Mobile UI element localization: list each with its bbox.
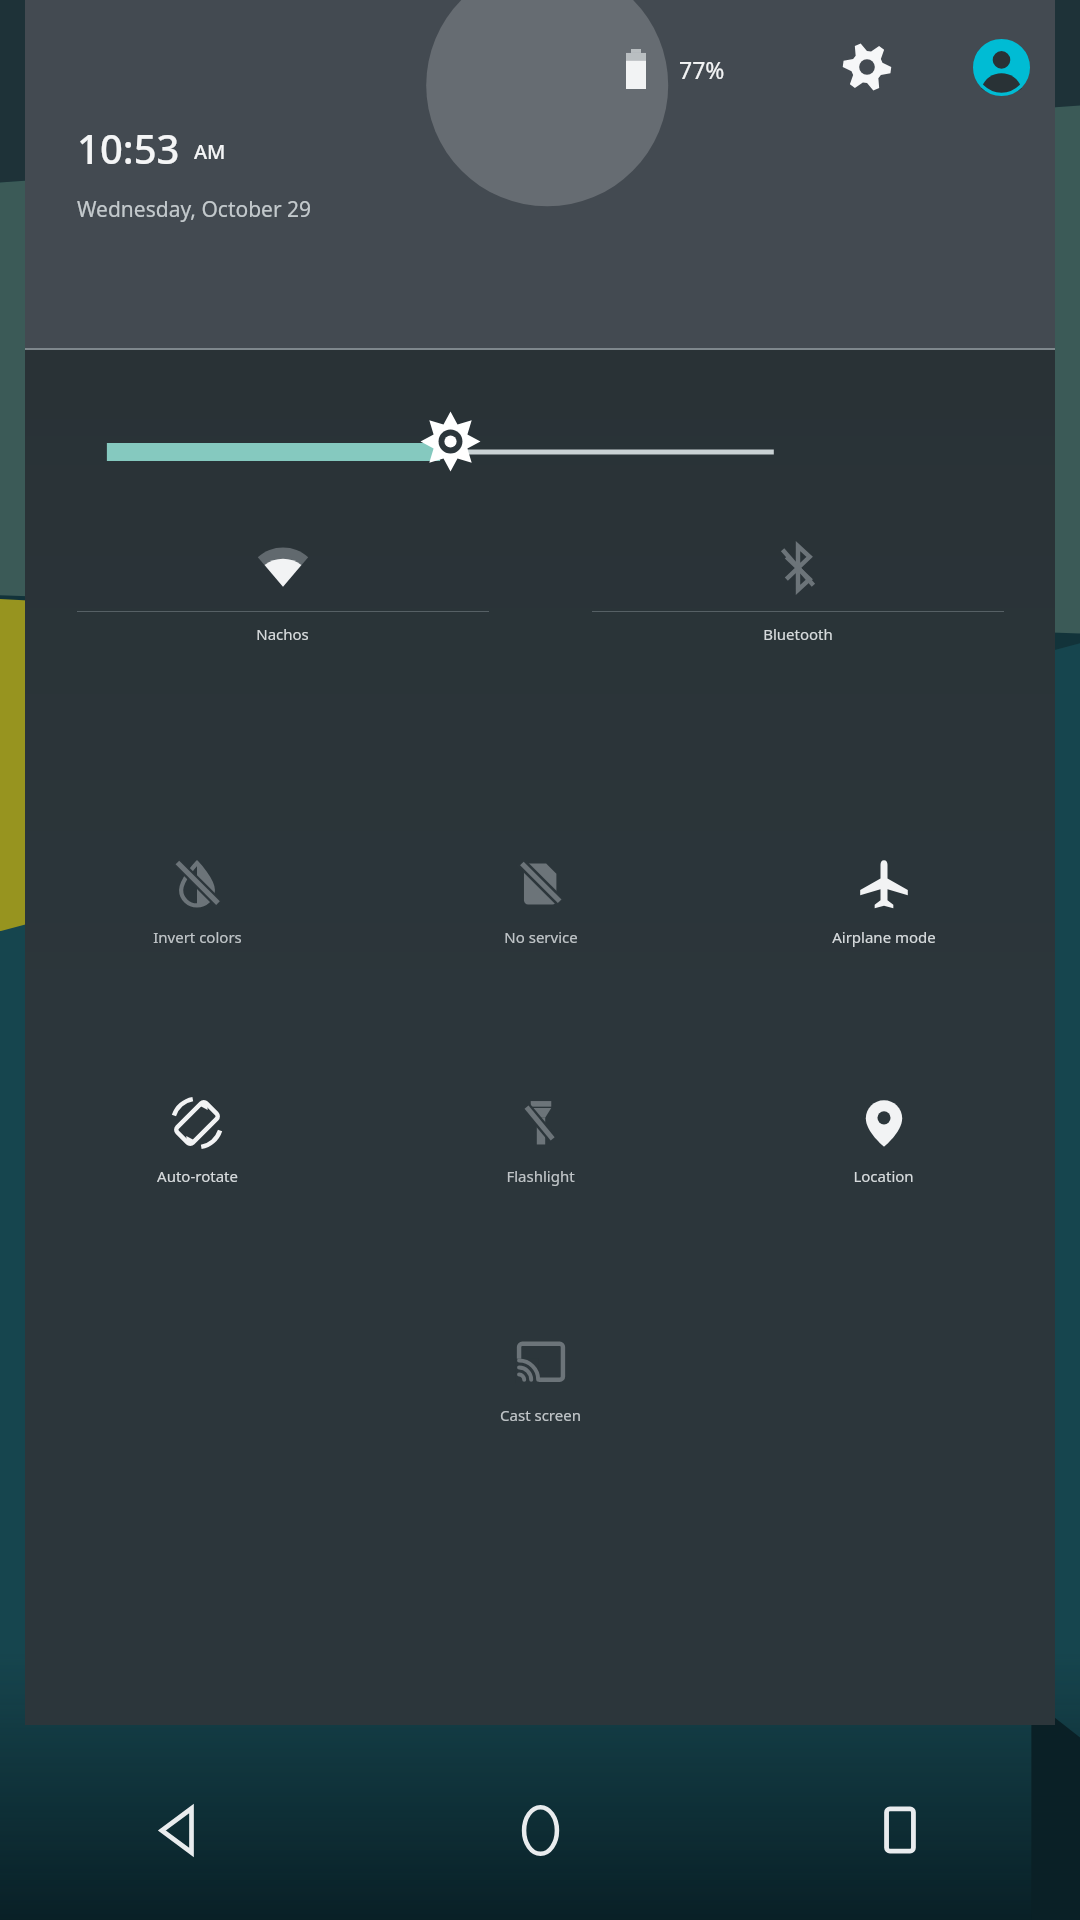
button[interactable]: User profile [973,39,1030,96]
staticText: No service [504,927,578,947]
staticText: Bluetooth [763,624,833,644]
staticText: 77% [679,54,725,85]
staticText: AM [194,138,226,165]
button[interactable]: No service [369,836,712,1048]
button[interactable]: 10:53 [77,121,226,175]
button[interactable]: Auto-rotate [25,1075,369,1287]
staticText: Invert colors [153,927,242,947]
button[interactable]: Invert colors [25,836,369,1048]
staticText: 10:53 [77,121,180,175]
staticText: Nachos [256,624,309,644]
button[interactable]: Back [0,1740,360,1920]
button[interactable]: Battery 77 percent [611,44,725,94]
staticText: Location [853,1166,914,1186]
button[interactable]: Cast screen [369,1314,712,1526]
button[interactable]: Flashlight [369,1075,712,1287]
button[interactable]: Settings [841,41,893,93]
button[interactable]: Bluetooth [540,520,1055,780]
staticText: Flashlight [506,1166,575,1186]
staticText: Auto-rotate [157,1166,238,1186]
button[interactable]: Nachos [25,520,540,780]
button[interactable]: Airplane mode [712,836,1055,1048]
staticText: Wednesday, October 29 [77,195,312,224]
staticText: Airplane mode [832,927,936,947]
button[interactable]: Location [712,1075,1055,1287]
staticText: Cast screen [500,1405,581,1425]
button[interactable]: Home [360,1740,720,1920]
button[interactable]: Brightness [420,411,481,472]
button[interactable]: Recent apps [720,1740,1080,1920]
